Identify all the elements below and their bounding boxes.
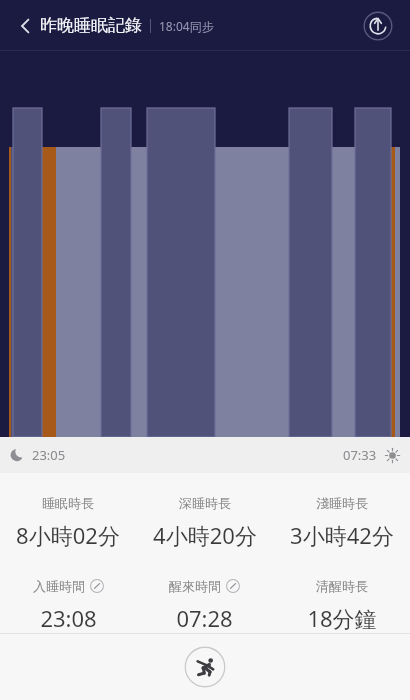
staticText: 深睡時長 (179, 495, 231, 511)
staticText: 07:33 (343, 446, 377, 464)
staticText: 4小時20分 (153, 520, 257, 550)
other: Edit 入睡時間 (90, 579, 104, 593)
staticText: 醒來時間 (169, 578, 221, 594)
staticText: 23:08 (40, 603, 97, 633)
staticText: 昨晚睡眠記錄 (40, 15, 142, 36)
staticText: 清醒時長 (316, 578, 368, 594)
other: Edit 醒來時間 (226, 579, 240, 593)
button[interactable]: 淺睡時長 (273, 495, 410, 550)
staticText: 入睡時間 (33, 578, 85, 594)
staticText: 8小時02分 (16, 520, 120, 550)
button[interactable]: 醒來時間 (136, 578, 273, 633)
button[interactable]: Upload (358, 6, 398, 46)
staticText: 3小時42分 (290, 520, 394, 550)
staticText: 睡眠時長 (42, 495, 94, 511)
button[interactable]: 睡眠時長 (0, 495, 136, 550)
staticText: 18:04同步 (159, 18, 214, 34)
button[interactable]: Back (4, 4, 48, 48)
staticText: 23:05 (32, 446, 66, 464)
button[interactable]: 清醒時長 (273, 578, 410, 633)
staticText: 07:28 (176, 603, 233, 633)
staticText: 18分鐘 (307, 603, 377, 633)
button[interactable]: Activity (184, 646, 226, 688)
button[interactable]: 入睡時間 (0, 578, 136, 633)
staticText: 淺睡時長 (316, 495, 368, 511)
button[interactable]: 深睡時長 (136, 495, 273, 550)
